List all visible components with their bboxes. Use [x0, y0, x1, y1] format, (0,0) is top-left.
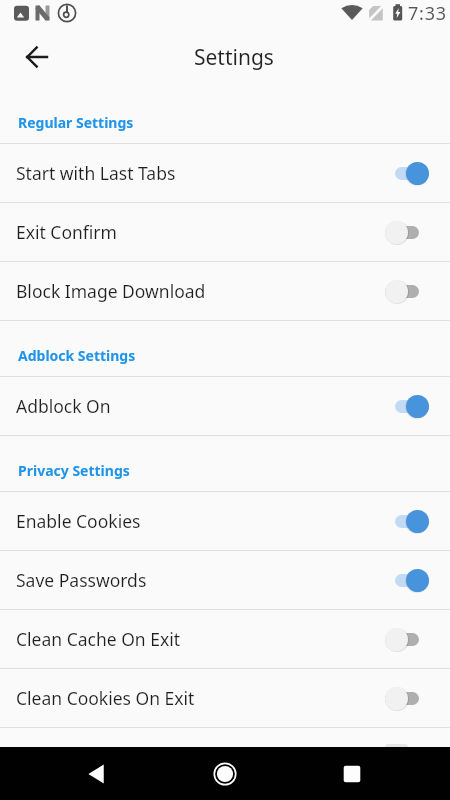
button[interactable]: [201, 747, 249, 800]
button[interactable]: [385, 626, 429, 652]
staticText: Settings: [194, 43, 274, 72]
button[interactable]: [385, 278, 429, 304]
staticText: Block Image Download: [16, 279, 385, 303]
button[interactable]: Block Image Download: [0, 262, 450, 321]
button[interactable]: [385, 160, 429, 186]
staticText: Start with Last Tabs: [16, 161, 385, 185]
staticText: Save Passwords: [16, 568, 385, 592]
button[interactable]: [385, 685, 429, 711]
staticText: Enable Cookies: [16, 509, 385, 533]
staticText: Adblock On: [16, 394, 385, 418]
button[interactable]: Save Passwords: [0, 551, 450, 610]
button[interactable]: [385, 219, 429, 245]
button[interactable]: [385, 393, 429, 419]
button[interactable]: Exit Confirm: [0, 203, 450, 262]
staticText: Clean Cookies On Exit: [16, 686, 385, 710]
button[interactable]: [16, 36, 58, 78]
button[interactable]: [328, 747, 376, 800]
button[interactable]: [385, 508, 429, 534]
button[interactable]: Clean Cache On Exit: [0, 610, 450, 669]
button[interactable]: Start with Last Tabs: [0, 144, 450, 203]
staticText: Clean Cache On Exit: [16, 627, 385, 651]
staticText: Exit Confirm: [16, 220, 385, 244]
staticText: Regular Settings: [18, 113, 134, 132]
staticText: Privacy Settings: [18, 461, 130, 480]
button[interactable]: [385, 567, 429, 593]
button[interactable]: Enable Cookies: [0, 492, 450, 551]
button[interactable]: Clean Cookies On Exit: [0, 669, 450, 728]
staticText: 7:33: [408, 1, 447, 26]
button[interactable]: [74, 747, 122, 800]
button[interactable]: Adblock On: [0, 377, 450, 436]
staticText: Adblock Settings: [18, 346, 136, 365]
